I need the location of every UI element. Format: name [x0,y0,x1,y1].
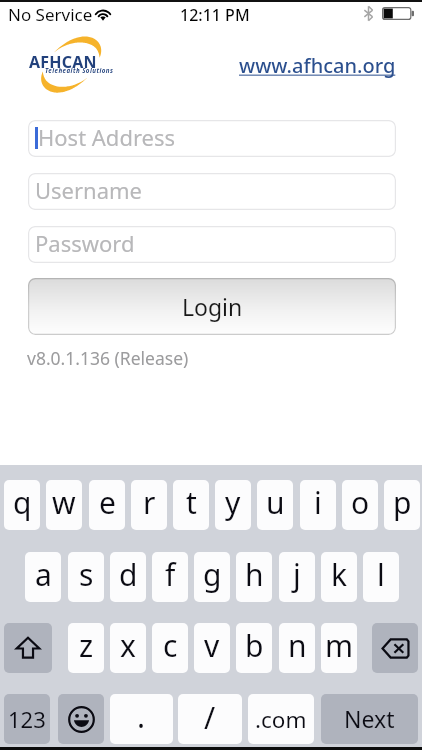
staticText: t [186,482,197,523]
button[interactable]: .com [248,694,314,744]
button[interactable]: d [110,552,146,602]
button[interactable]: h [236,552,272,602]
button[interactable]: r [131,480,167,530]
button[interactable]: k [321,552,357,602]
staticText: d [119,554,138,595]
staticText: w [52,482,76,523]
staticText: p [393,482,412,523]
staticText: v8.0.1.136 (Release) [27,346,189,370]
staticText: m [325,625,354,666]
staticText: Username [35,175,143,205]
staticText: s [79,554,94,595]
staticText: n [288,625,307,666]
staticText: 123 [8,704,46,734]
button[interactable]: p [384,480,420,530]
staticText: Password [35,228,135,258]
button[interactable]: Shift [4,623,52,673]
button[interactable]: / [178,694,242,744]
staticText: / [204,697,216,738]
staticText: z [79,625,94,666]
button[interactable]: s [68,552,104,602]
button[interactable]: Emoji [58,694,104,744]
button[interactable]: . [110,694,173,744]
staticText: Next [344,703,395,734]
button[interactable]: z [68,623,104,673]
staticText: a [35,554,52,595]
staticText: i [314,482,322,523]
staticText: h [245,554,264,595]
button[interactable]: x [110,623,146,673]
staticText: g [203,554,222,595]
staticText: . [137,696,146,737]
staticText: o [351,482,370,523]
button[interactable]: a [25,552,61,602]
button[interactable]: Backspace [372,623,418,673]
button[interactable]: w [46,480,82,530]
staticText: j [293,554,301,595]
staticText: Login [182,291,243,322]
staticText: u [266,482,285,523]
button[interactable]: c [152,623,188,673]
staticText: 12:11 PM [180,4,250,26]
button[interactable]: o [342,480,378,530]
button[interactable]: 123 [4,694,50,744]
button[interactable]: i [300,480,336,530]
staticText: b [245,625,264,666]
button[interactable]: g [194,552,230,602]
button[interactable]: Username [28,173,396,210]
staticText: c [163,625,178,666]
button[interactable]: Password [28,226,396,263]
button[interactable]: Login [28,278,396,335]
button[interactable]: v [194,623,230,673]
button[interactable]: e [89,480,125,530]
button[interactable]: j [279,552,315,602]
staticText: AFHCAN [29,51,97,73]
staticText: v [204,625,220,666]
button[interactable]: b [236,623,272,673]
button[interactable]: Host Address [28,120,396,157]
button[interactable]: Next [321,694,418,744]
staticText: Telehealth Solutions [45,66,114,74]
staticText: f [165,554,176,595]
button[interactable]: q [4,480,40,530]
button[interactable]: n [279,623,315,673]
staticText: e [99,482,116,523]
staticText: r [143,482,156,523]
button[interactable]: www.afhcan.org [239,52,396,79]
button[interactable]: f [152,552,188,602]
staticText: Host Address [38,122,176,152]
button[interactable]: m [321,623,357,673]
staticText: y [225,482,241,523]
button[interactable]: t [173,480,209,530]
staticText: www.afhcan.org [239,52,396,79]
staticText: .com [255,704,307,735]
button[interactable]: y [215,480,251,530]
staticText: l [377,554,385,595]
staticText: k [331,554,348,595]
button[interactable]: u [257,480,293,530]
staticText: x [120,625,136,666]
staticText: No Service [8,3,93,26]
staticText: q [13,482,32,523]
button[interactable]: l [363,552,399,602]
